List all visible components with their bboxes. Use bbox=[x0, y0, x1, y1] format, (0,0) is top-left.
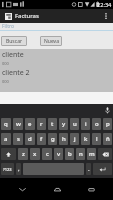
staticText: 000 bbox=[2, 61, 9, 66]
button[interactable]: z bbox=[18, 148, 28, 160]
button[interactable]: v bbox=[54, 148, 63, 160]
button[interactable]: e bbox=[25, 118, 35, 130]
staticText: u bbox=[73, 120, 77, 128]
button[interactable]: Recents bbox=[79, 178, 103, 200]
staticText: 22:34 bbox=[97, 1, 112, 9]
button[interactable]: Back bbox=[10, 178, 34, 200]
button[interactable]: a bbox=[1, 133, 11, 145]
button[interactable]: x bbox=[30, 148, 40, 160]
button[interactable]: r bbox=[37, 118, 46, 130]
button[interactable]: . bbox=[86, 163, 91, 175]
button[interactable]: k bbox=[81, 133, 90, 145]
button[interactable]: Delete bbox=[98, 148, 112, 160]
staticText: Buscar bbox=[6, 38, 23, 45]
button[interactable]: n bbox=[76, 148, 85, 160]
button[interactable]: y bbox=[59, 118, 68, 130]
button[interactable]: m bbox=[87, 148, 96, 160]
staticText: Facturas bbox=[15, 12, 39, 20]
button[interactable]: Filtro bbox=[0, 23, 113, 30]
button[interactable]: j bbox=[70, 133, 79, 145]
staticText: o bbox=[95, 120, 99, 128]
staticText: i bbox=[85, 120, 87, 128]
button[interactable]: c bbox=[42, 148, 52, 160]
button[interactable]: u bbox=[70, 118, 79, 130]
staticText: l bbox=[96, 135, 98, 143]
button[interactable]: cliente bbox=[0, 49, 113, 67]
button[interactable]: p bbox=[103, 118, 112, 130]
staticText: q bbox=[4, 120, 8, 128]
button[interactable]: d bbox=[25, 133, 35, 145]
button[interactable]: Buscar bbox=[1, 36, 27, 46]
staticText: r bbox=[40, 120, 43, 128]
button[interactable]: cliente 2 bbox=[0, 67, 113, 85]
button[interactable]: f bbox=[37, 133, 46, 145]
staticText: . bbox=[88, 165, 90, 173]
staticText: v bbox=[57, 150, 61, 158]
staticText: cliente 2 bbox=[2, 68, 30, 78]
button[interactable]: More options bbox=[100, 9, 112, 23]
staticText: ?123 bbox=[3, 167, 12, 172]
staticText: , bbox=[18, 165, 20, 173]
button[interactable]: , bbox=[16, 163, 21, 175]
staticText: k bbox=[84, 135, 88, 143]
button[interactable]: Shift bbox=[1, 148, 16, 160]
staticText: ñ bbox=[106, 135, 110, 143]
button[interactable]: h bbox=[59, 133, 68, 145]
button[interactable]: s bbox=[13, 133, 23, 145]
staticText: m bbox=[89, 150, 95, 158]
staticText: f bbox=[40, 135, 43, 143]
staticText: g bbox=[51, 135, 55, 143]
button[interactable]: t bbox=[48, 118, 57, 130]
button[interactable]: Home bbox=[45, 178, 69, 200]
staticText: n bbox=[79, 150, 83, 158]
button[interactable]: i bbox=[81, 118, 90, 130]
staticText: c bbox=[46, 150, 49, 158]
staticText: d bbox=[28, 135, 32, 143]
staticText: Filtro bbox=[2, 23, 14, 30]
button[interactable]: g bbox=[48, 133, 57, 145]
staticText: t bbox=[51, 120, 54, 128]
staticText: s bbox=[17, 135, 20, 143]
button[interactable]: Enter bbox=[93, 163, 112, 175]
staticText: b bbox=[68, 150, 72, 158]
button[interactable]: w bbox=[13, 118, 23, 130]
staticText: a bbox=[4, 135, 8, 143]
button[interactable]: Voice input bbox=[101, 104, 113, 116]
button[interactable]: q bbox=[1, 118, 11, 130]
button[interactable]: b bbox=[65, 148, 74, 160]
staticText: y bbox=[62, 120, 66, 128]
staticText: Nueva bbox=[44, 38, 59, 45]
staticText: w bbox=[16, 120, 21, 128]
staticText: p bbox=[106, 120, 110, 128]
button[interactable]: Nueva bbox=[40, 36, 62, 46]
button[interactable]: ?123 bbox=[1, 163, 14, 175]
staticText: x bbox=[33, 150, 37, 158]
staticText: j bbox=[74, 135, 76, 143]
button[interactable]: l bbox=[92, 133, 101, 145]
button[interactable]: ñ bbox=[103, 133, 112, 145]
staticText: z bbox=[22, 150, 25, 158]
button[interactable]: o bbox=[92, 118, 101, 130]
staticText: 000 bbox=[2, 79, 9, 84]
staticText: h bbox=[62, 135, 66, 143]
staticText: e bbox=[28, 120, 32, 128]
staticText: cliente bbox=[2, 50, 24, 60]
